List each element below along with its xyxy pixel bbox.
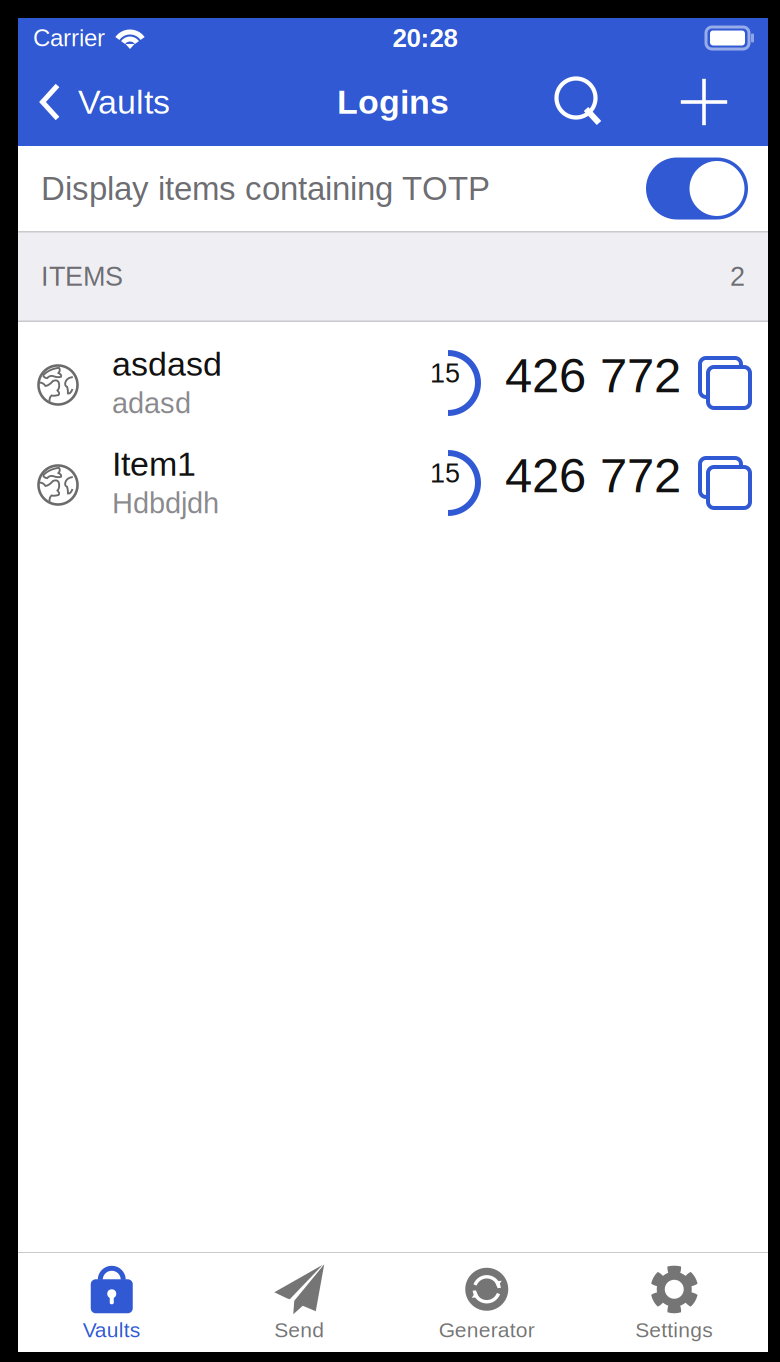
staticText: ITEMS	[41, 261, 123, 292]
button[interactable]: Settings	[580, 1253, 768, 1352]
staticText: adasd	[112, 387, 191, 419]
staticText: 426 772	[505, 448, 681, 503]
button[interactable]: Add item	[660, 58, 748, 146]
button[interactable]: Generator	[393, 1253, 580, 1352]
button[interactable]: Vaults	[18, 1253, 205, 1352]
staticText: 15	[430, 458, 460, 488]
button[interactable]: Search	[535, 58, 623, 146]
staticText: 15	[430, 358, 460, 388]
staticText: Vaults	[78, 83, 170, 121]
button[interactable]: Vaults	[18, 58, 170, 146]
staticText: Settings	[635, 1318, 713, 1342]
staticText: Display items containing TOTP	[41, 170, 490, 207]
button[interactable]: Send	[205, 1253, 393, 1352]
button[interactable]: asdasd	[18, 322, 768, 422]
staticText: Send	[274, 1318, 324, 1342]
staticText: Generator	[439, 1318, 535, 1342]
staticText: 20:28	[392, 23, 457, 52]
staticText: 426 772	[505, 348, 681, 403]
button[interactable]: Display items containing TOTP	[18, 146, 768, 231]
staticText: Hdbdjdh	[112, 487, 219, 519]
button[interactable]: Item1	[18, 422, 768, 522]
staticText: Carrier	[33, 25, 105, 51]
staticText: asdasd	[112, 345, 222, 383]
staticText: Logins	[337, 83, 449, 121]
staticText: 2	[730, 261, 745, 292]
staticText: Vaults	[83, 1318, 141, 1342]
staticText: Item1	[112, 445, 196, 483]
